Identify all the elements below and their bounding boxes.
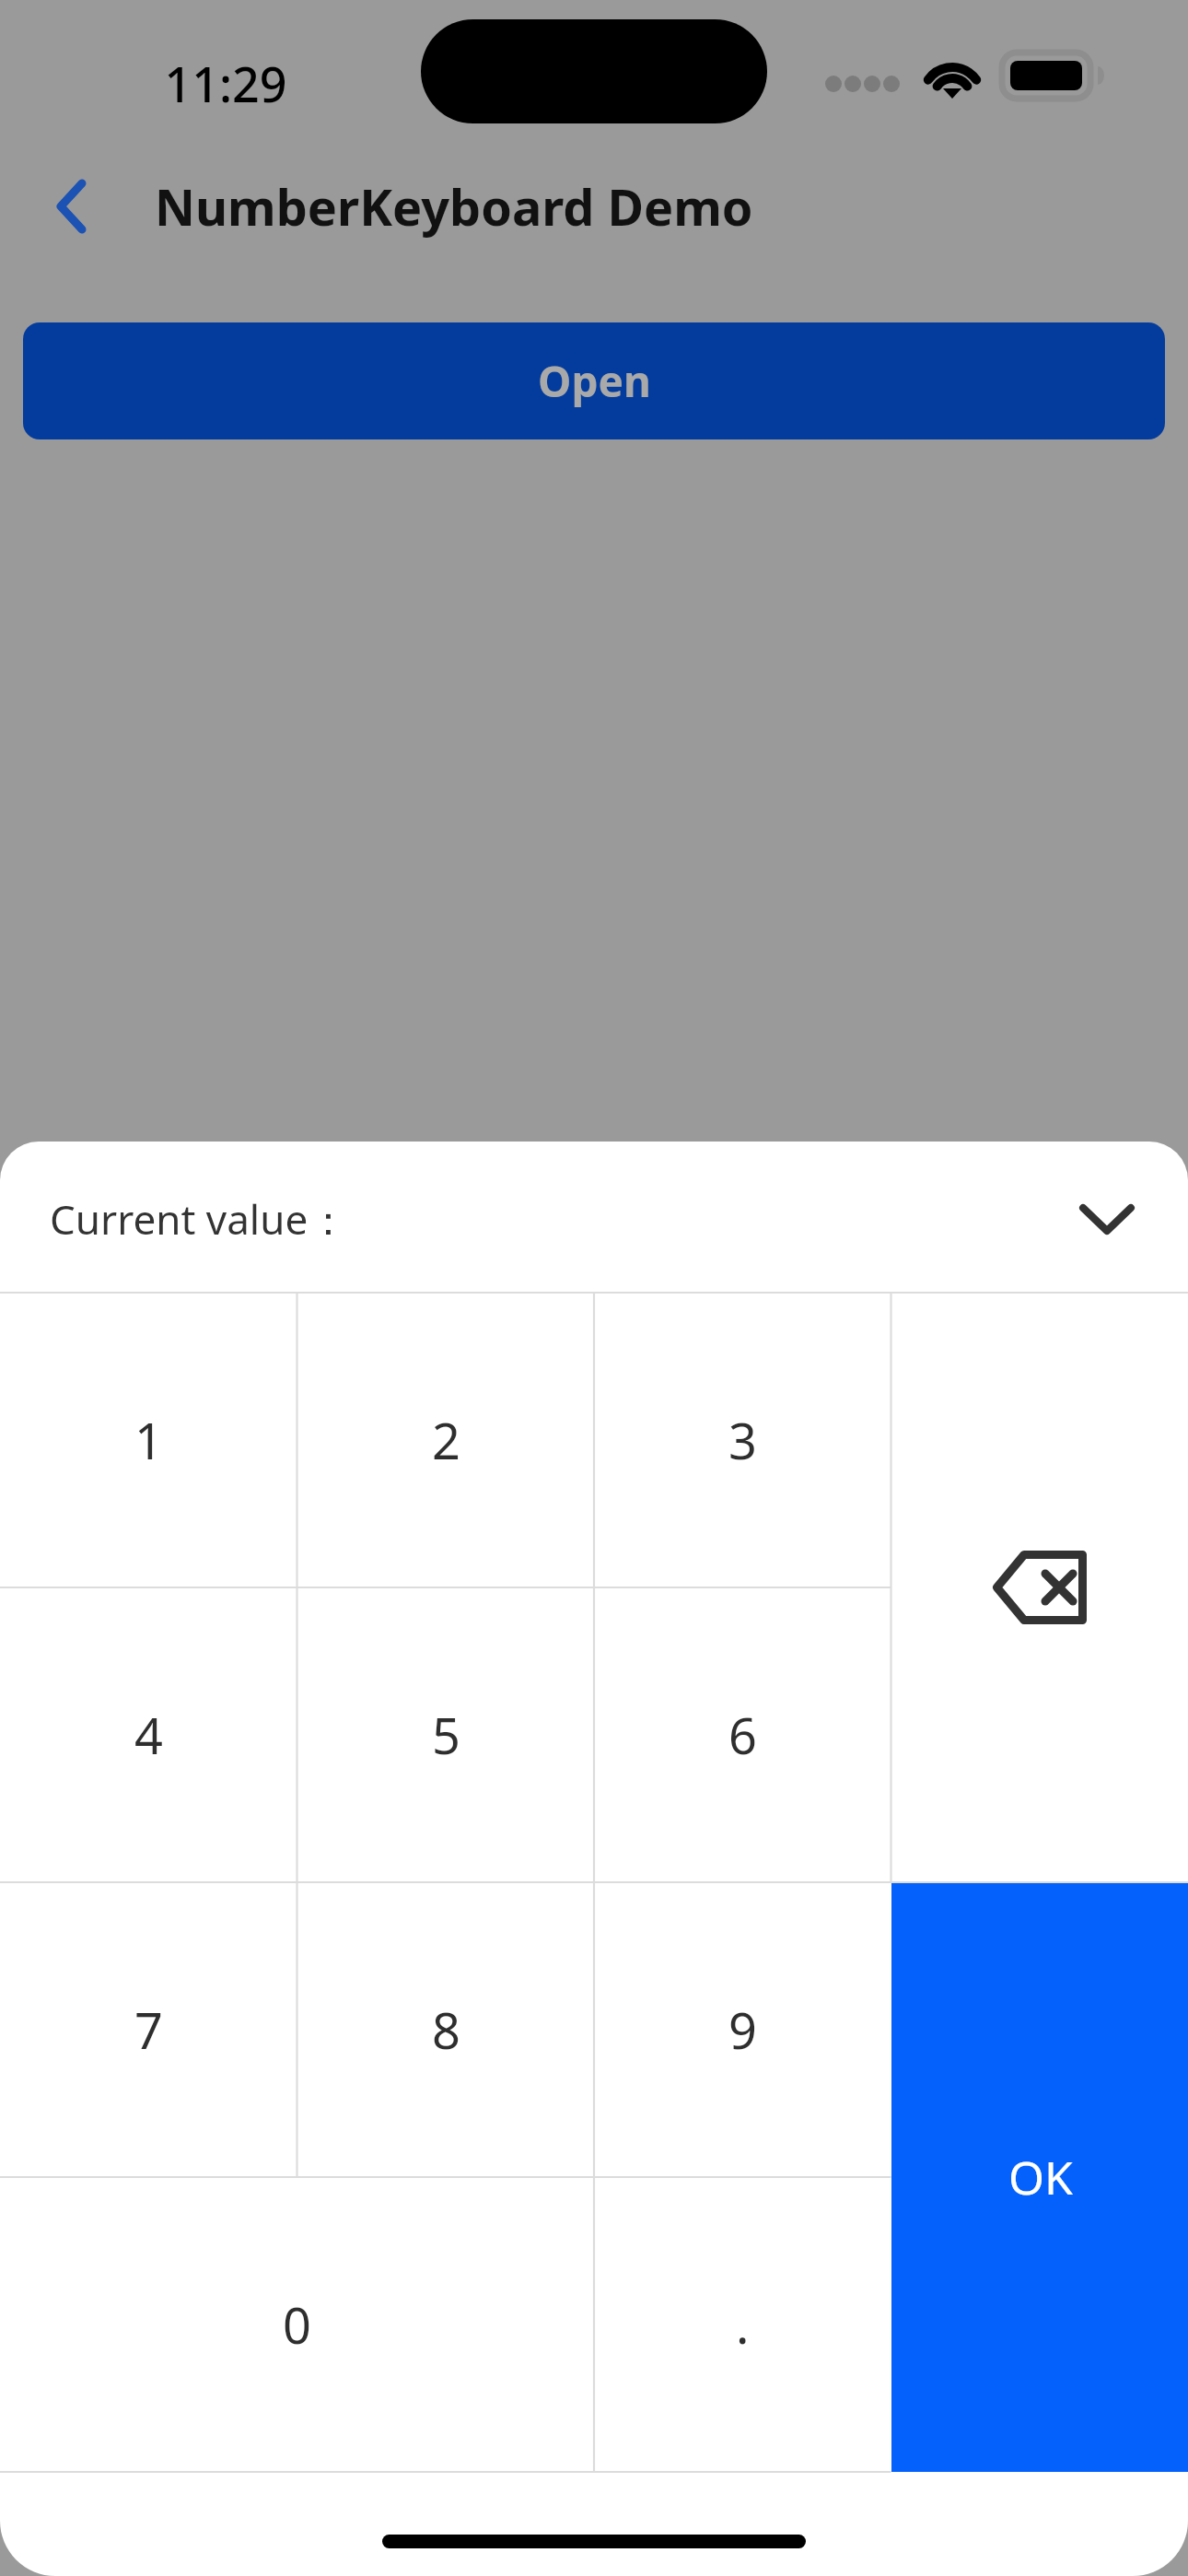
staticText: 9	[728, 1996, 757, 2064]
button[interactable]: .	[594, 2177, 891, 2472]
staticText: 1	[134, 1406, 163, 1474]
staticText: OK	[1008, 2146, 1073, 2208]
button[interactable]: 8	[297, 1882, 595, 2177]
button[interactable]: Back	[28, 162, 116, 251]
button[interactable]: 7	[0, 1882, 297, 2177]
button[interactable]: 2	[297, 1293, 595, 1587]
button[interactable]: Collapse keyboard	[1063, 1174, 1151, 1262]
staticText: 7	[134, 1996, 163, 2064]
button[interactable]: 9	[594, 1882, 891, 2177]
button[interactable]: 6	[594, 1587, 891, 1882]
staticText: NumberKeyboard Demo	[155, 172, 753, 240]
staticText: Current value：	[50, 1191, 349, 1247]
staticText: 5	[432, 1701, 460, 1769]
staticText: 4	[134, 1701, 163, 1769]
staticText: 2	[432, 1406, 460, 1474]
button[interactable]: 3	[594, 1293, 891, 1587]
button[interactable]: 4	[0, 1587, 297, 1882]
staticText: 11:29	[164, 51, 287, 110]
staticText: 3	[728, 1406, 757, 1474]
staticText: 6	[728, 1701, 757, 1769]
button[interactable]: OK	[891, 1882, 1188, 2472]
staticText: 8	[432, 1996, 460, 2064]
button[interactable]: Open	[23, 322, 1165, 439]
staticText: .	[736, 2290, 750, 2359]
staticText: 0	[283, 2290, 311, 2359]
button[interactable]: 5	[297, 1587, 595, 1882]
button[interactable]: 1	[0, 1293, 297, 1587]
button[interactable]: Delete	[891, 1293, 1188, 1882]
button[interactable]: 0	[0, 2177, 594, 2472]
staticText: Open	[538, 352, 651, 410]
